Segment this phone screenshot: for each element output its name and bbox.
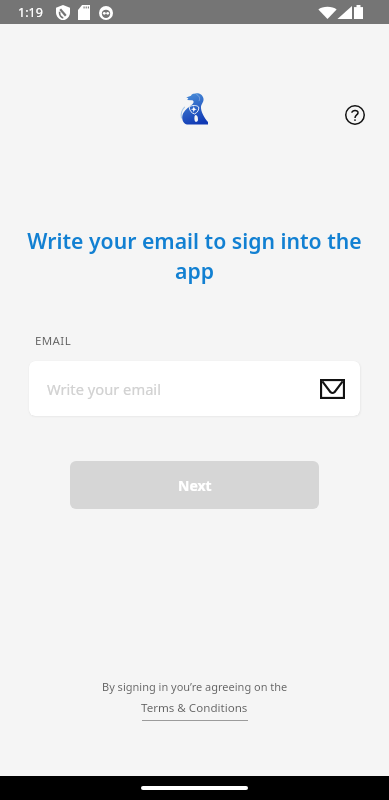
staticText: 1:19 xyxy=(18,4,43,21)
button[interactable]: Terms & Conditions xyxy=(141,700,248,721)
staticText: EMAIL xyxy=(35,333,72,349)
staticText: Next xyxy=(178,476,212,495)
button[interactable]: Next xyxy=(70,461,319,509)
button[interactable]: Write your email xyxy=(29,361,360,416)
staticText: By signing in you’re agreeing on the xyxy=(102,679,288,694)
button[interactable]: Help xyxy=(333,93,376,136)
staticText: Terms & Conditions xyxy=(141,700,248,716)
staticText: Write your email to sign into the app xyxy=(22,226,367,286)
staticText: Write your email xyxy=(47,379,161,399)
